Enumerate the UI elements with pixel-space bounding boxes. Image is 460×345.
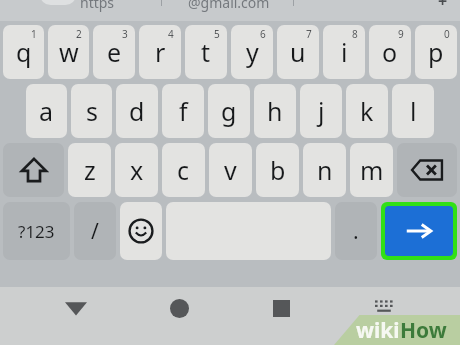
staticText: d [129, 94, 145, 128]
staticText: u [290, 35, 306, 69]
button[interactable]: x [115, 143, 158, 197]
staticText: s [86, 94, 98, 128]
staticText: b [270, 153, 286, 187]
staticText: f [179, 94, 188, 128]
staticText: k [360, 94, 374, 128]
staticText: j [318, 94, 325, 128]
button[interactable]: r [139, 25, 181, 79]
staticText: 4 [168, 27, 174, 41]
staticText: z [84, 153, 96, 187]
staticText: w [59, 35, 79, 69]
staticText: p [428, 35, 444, 69]
button[interactable]: p [415, 25, 457, 79]
button[interactable]: o [369, 25, 411, 79]
button[interactable]: Emoji [120, 202, 162, 260]
staticText: g [221, 94, 237, 128]
staticText: / [91, 217, 99, 246]
button[interactable]: ?123 [3, 202, 70, 260]
button[interactable]: s [71, 84, 112, 138]
staticText: h [267, 94, 283, 128]
button[interactable]: k [346, 84, 388, 138]
button[interactable]: e [93, 25, 135, 79]
button[interactable]: Back [40, 0, 76, 5]
button[interactable]: g [208, 84, 250, 138]
staticText: a [39, 94, 54, 128]
staticText: 2 [76, 27, 82, 41]
button[interactable]: y [231, 25, 273, 79]
button[interactable]: d [116, 84, 158, 138]
button[interactable]: / [74, 202, 116, 260]
staticText: @gmail.com [188, 0, 270, 12]
staticText: e [107, 35, 122, 69]
staticText: https [80, 0, 115, 12]
button[interactable]: f [162, 84, 204, 138]
staticText: x [130, 153, 144, 187]
staticText: 6 [260, 27, 266, 41]
staticText: 5 [214, 27, 220, 41]
button[interactable]: q [3, 25, 44, 79]
staticText: c [177, 153, 190, 187]
staticText: y [246, 35, 259, 69]
button[interactable]: z [68, 143, 111, 197]
staticText: + [438, 0, 448, 11]
button[interactable]: Back [50, 287, 102, 329]
staticText: How [400, 316, 447, 345]
button[interactable]: v [209, 143, 252, 197]
button[interactable]: t [185, 25, 227, 79]
button[interactable]: c [162, 143, 205, 197]
button[interactable]: n [303, 143, 346, 197]
staticText: n [317, 153, 333, 187]
button[interactable]: Backspace [397, 143, 457, 197]
button[interactable]: b [256, 143, 299, 197]
staticText: v [224, 153, 237, 187]
button[interactable]: m [350, 143, 393, 197]
button[interactable]: w [48, 25, 89, 79]
staticText: i [341, 35, 348, 69]
staticText: 0 [444, 27, 450, 41]
staticText: o [382, 35, 398, 69]
staticText: q [16, 35, 32, 69]
staticText: m [360, 153, 384, 187]
button[interactable]: Shift [3, 143, 64, 197]
staticText: wiki [356, 316, 400, 345]
button[interactable]: Hide keyboard [358, 287, 410, 329]
staticText: ?123 [18, 220, 55, 243]
staticText: l [410, 94, 417, 128]
button[interactable]: Home [153, 287, 205, 329]
staticText: 8 [352, 27, 358, 41]
staticText: 3 [122, 27, 128, 41]
button[interactable]: Enter [385, 206, 453, 256]
button[interactable]: l [392, 84, 434, 138]
staticText: t [201, 35, 211, 69]
staticText: . [353, 217, 359, 246]
button[interactable]: . [335, 202, 377, 260]
button[interactable]: u [277, 25, 319, 79]
staticText: 9 [398, 27, 404, 41]
staticText: r [155, 35, 166, 69]
button[interactable]: Recents [255, 287, 307, 329]
staticText: 1 [31, 27, 37, 41]
button[interactable]: h [254, 84, 296, 138]
button[interactable]: a [26, 84, 67, 138]
staticText: 7 [306, 27, 312, 41]
button[interactable]: i [323, 25, 365, 79]
button[interactable]: j [300, 84, 342, 138]
